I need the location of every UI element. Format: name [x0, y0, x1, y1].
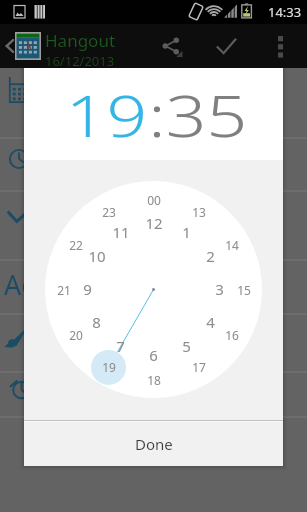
staticText: 15 [237, 282, 251, 298]
staticText: 11 [112, 222, 130, 242]
staticText: Hangout [45, 29, 116, 52]
staticText: 8 [92, 312, 101, 332]
staticText: : [148, 76, 166, 154]
button[interactable]: Agenda item [0, 191, 307, 260]
staticText: 1 [182, 222, 191, 242]
button[interactable]: Agenda item [0, 372, 307, 417]
staticText: 9 [83, 279, 92, 299]
staticText: 4 [206, 312, 215, 332]
button[interactable]: Navigate up [0, 24, 20, 68]
staticText: 13 [192, 204, 206, 220]
button[interactable]: Done [207, 24, 245, 68]
staticText: 18 [147, 372, 161, 388]
button[interactable]: Agenda item [0, 138, 307, 191]
staticText: 12 [145, 213, 163, 233]
staticText: Done [135, 434, 173, 454]
staticText: 2 [206, 246, 215, 266]
staticText: 14:33 [268, 3, 302, 21]
staticText: 7 [116, 336, 125, 356]
button[interactable]: More options [266, 24, 294, 68]
button[interactable]: Agenda item [0, 68, 307, 138]
staticText: 14 [225, 237, 239, 253]
staticText: 17 [192, 359, 206, 375]
staticText: 35 [166, 76, 248, 154]
staticText: 5 [182, 336, 191, 356]
button[interactable]: Share [152, 24, 190, 68]
button[interactable]: 35 [166, 76, 248, 154]
staticText: Add [4, 266, 55, 303]
staticText: 23 [102, 204, 116, 220]
button[interactable]: Agenda item [0, 314, 307, 372]
staticText: 10 [88, 246, 106, 266]
staticText: 6 [149, 345, 158, 365]
button[interactable]: Done [24, 422, 283, 466]
staticText: 19 [66, 76, 148, 154]
staticText: 22 [69, 237, 83, 253]
staticText: 3 [215, 279, 224, 299]
staticText: 19 [102, 359, 116, 375]
button[interactable]: Agenda item [0, 260, 307, 314]
staticText: 00 [147, 192, 161, 208]
button[interactable]: 19 [66, 76, 148, 154]
staticText: 21 [57, 282, 71, 298]
staticText: 16 [225, 327, 239, 343]
staticText: 16/12/2013 [45, 52, 115, 70]
staticText: 20 [69, 327, 83, 343]
